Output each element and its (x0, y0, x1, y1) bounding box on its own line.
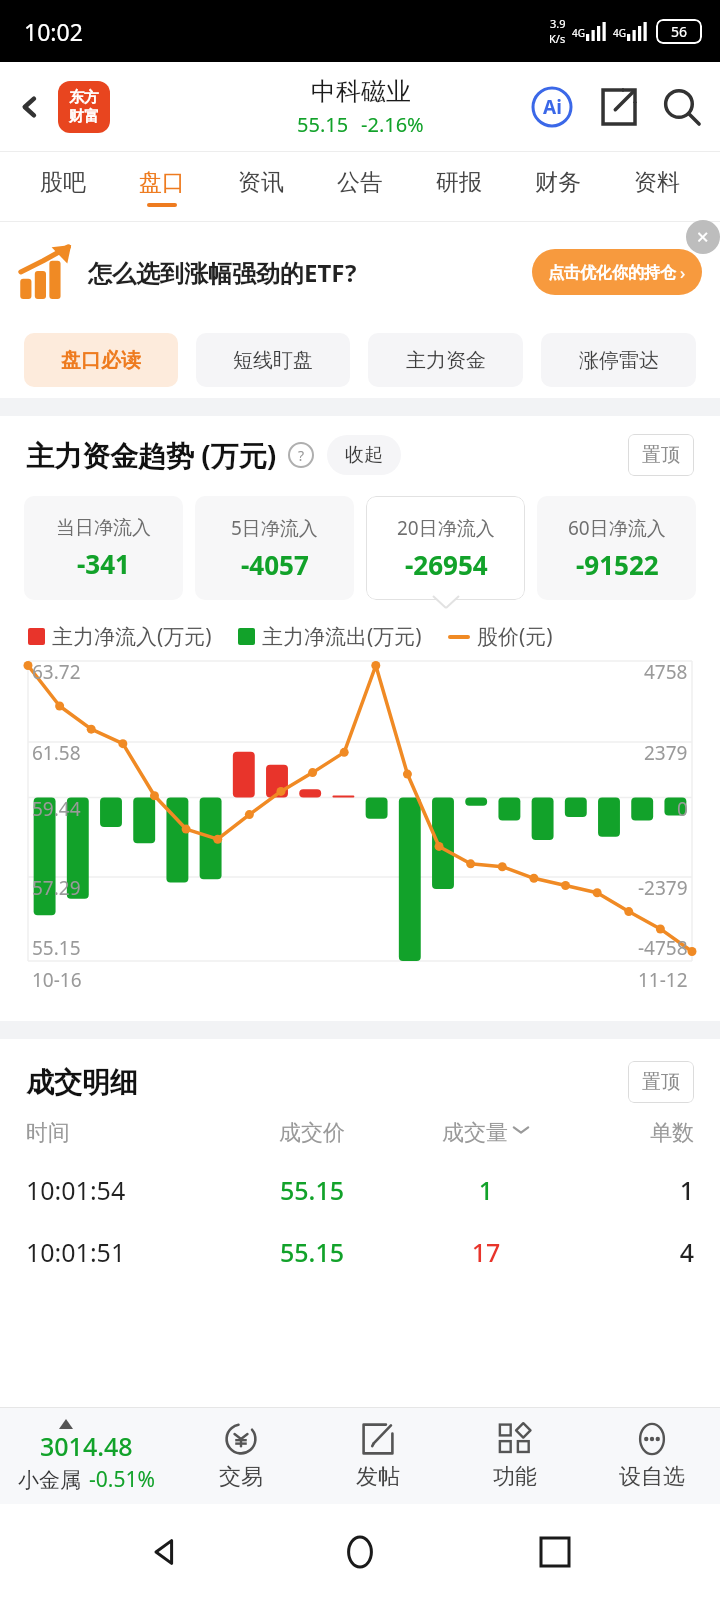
staticText: 4G (613, 26, 626, 40)
button[interactable]: 20日净流入 (366, 496, 525, 600)
staticText: 主力资金 (406, 348, 486, 373)
button[interactable]: 资料 (607, 152, 706, 222)
staticText: 0 (677, 796, 688, 822)
button[interactable]: 盘口必读 (24, 333, 178, 387)
button[interactable]: 财务 (508, 152, 607, 222)
button[interactable]: 最近任务 (525, 1522, 585, 1582)
staticText: 3.9 (550, 16, 566, 31)
button[interactable]: 盘口 (112, 152, 211, 222)
staticText: 1 (399, 1173, 573, 1207)
button[interactable]: 公告 (310, 152, 409, 222)
button[interactable]: 短线盯盘 (196, 333, 350, 387)
staticText: 单数 (573, 1119, 694, 1147)
staticText: 10:02 (24, 16, 83, 47)
button[interactable]: 当日净流入 (24, 496, 183, 600)
button[interactable]: 5日净流入 (195, 496, 354, 600)
staticText: 功能 (493, 1463, 537, 1491)
staticText: -26954 (405, 547, 488, 582)
staticText: 资讯 (238, 168, 284, 197)
staticText: › (680, 261, 686, 284)
staticText: 股吧 (40, 168, 86, 197)
button[interactable]: 关闭 (686, 220, 720, 254)
button[interactable]: 3014.48 (0, 1408, 172, 1504)
staticText: 资料 (634, 168, 680, 197)
staticText: ? (298, 446, 305, 465)
staticText: 公告 (337, 168, 383, 197)
button[interactable]: 东方 (58, 81, 110, 133)
staticText: 主力资金趋势 (万元) (26, 436, 277, 474)
staticText: 成交量 (442, 1119, 508, 1147)
button[interactable]: 主页 (330, 1522, 390, 1582)
staticText: 交易 (219, 1463, 263, 1491)
staticText: 11-12 (638, 967, 688, 993)
button[interactable]: 置顶 (628, 1061, 694, 1103)
staticText: 财富 (69, 107, 99, 126)
staticText: 主力净流入(万元) (52, 622, 212, 651)
staticText: 设自选 (619, 1463, 685, 1491)
staticText: K/s (549, 31, 566, 46)
staticText: 55.15 (225, 1173, 399, 1207)
staticText: 短线盯盘 (233, 348, 313, 373)
button[interactable]: AI (528, 83, 576, 131)
staticText: 主力净流出(万元) (262, 622, 422, 651)
button[interactable]: 置顶 (628, 434, 694, 476)
staticText: 小金属 (18, 1467, 81, 1493)
staticText: 5日净流入 (231, 515, 318, 541)
staticText: Ai (543, 94, 562, 120)
staticText: 发帖 (356, 1463, 400, 1491)
staticText: 60日净流入 (568, 515, 666, 541)
staticText: 4 (573, 1235, 694, 1269)
button[interactable]: 交易 (172, 1408, 309, 1504)
staticText: 当日净流入 (56, 516, 151, 540)
staticText: -341 (77, 546, 130, 581)
staticText: 东方 (69, 88, 99, 107)
staticText: 10:01:54 (26, 1173, 225, 1207)
button[interactable]: 功能 (446, 1408, 583, 1504)
staticText: 点击优化你的持仓 (548, 263, 676, 283)
button[interactable]: 收起 (327, 435, 401, 475)
button[interactable]: 说明 (287, 441, 315, 469)
staticText: ✕ (696, 228, 710, 247)
staticText: 1 (573, 1173, 694, 1207)
staticText: 中科磁业 (311, 76, 411, 107)
button[interactable]: 搜索 (658, 83, 706, 131)
button[interactable]: 设自选 (583, 1408, 720, 1504)
button[interactable]: 发帖 (309, 1408, 446, 1504)
staticText: 时间 (26, 1119, 225, 1147)
staticText: 10:01:51 (26, 1235, 225, 1269)
button[interactable]: 10:01:54 (0, 1173, 720, 1207)
staticText: 10-16 (32, 967, 82, 993)
button[interactable]: 返回 (8, 85, 52, 129)
staticText: 研报 (436, 168, 482, 197)
staticText: 怎么选到涨幅强劲的ETF? (88, 256, 357, 289)
staticText: 涨停雷达 (579, 348, 659, 373)
button[interactable]: 涨停雷达 (541, 333, 696, 387)
button[interactable]: 主力资金 (368, 333, 523, 387)
button[interactable]: 股吧 (14, 152, 112, 222)
staticText: -4758 (638, 935, 688, 961)
staticText: 成交明细 (26, 1065, 138, 1100)
staticText: -2.16% (361, 111, 424, 138)
button[interactable]: 60日净流入 (537, 496, 696, 600)
staticText: 成交价 (225, 1119, 399, 1147)
button[interactable]: 点击优化你的持仓 (532, 249, 702, 295)
button[interactable]: 资讯 (211, 152, 310, 222)
staticText: 盘口必读 (61, 348, 141, 373)
staticText: 55.15 (225, 1235, 399, 1269)
staticText: 股价(元) (477, 622, 553, 651)
button[interactable]: 10:01:51 (0, 1235, 720, 1269)
staticText: 17 (399, 1235, 573, 1269)
staticText: 59.44 (32, 796, 81, 822)
staticText: 4G (572, 26, 585, 40)
button[interactable]: 分享 (594, 83, 642, 131)
staticText: 置顶 (642, 443, 680, 467)
staticText: 3014.48 (40, 1429, 133, 1463)
button[interactable]: 研报 (409, 152, 508, 222)
staticText: 55.15 (32, 935, 81, 961)
staticText: 2379 (644, 740, 688, 766)
staticText: -4057 (241, 547, 309, 582)
staticText: 56 (671, 22, 688, 41)
staticText: -2379 (638, 875, 688, 901)
staticText: 63.72 (32, 659, 81, 685)
button[interactable]: 返回 (135, 1522, 195, 1582)
